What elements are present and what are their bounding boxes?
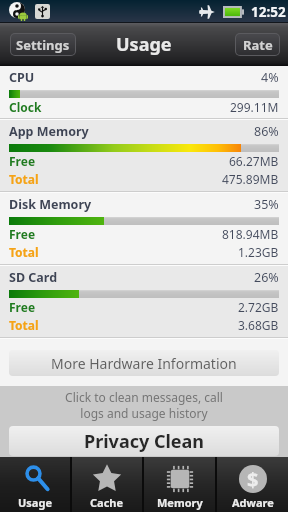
staticText: 4%	[261, 69, 279, 86]
staticText: Total	[9, 244, 39, 260]
staticText: 66.27MB	[229, 153, 279, 169]
other: Usage	[20, 464, 50, 494]
staticText: Rate	[243, 36, 273, 54]
staticText: Settings	[16, 36, 70, 54]
staticText: Click to clean messages, call	[65, 389, 223, 405]
other: Adware	[238, 464, 268, 494]
staticText: 2.72GB	[238, 299, 279, 315]
staticText: Free	[9, 153, 36, 169]
button[interactable]: Adware	[217, 457, 288, 512]
staticText: 26%	[254, 269, 279, 286]
button[interactable]: Disk Memory	[0, 193, 288, 264]
staticText: Disk Memory	[9, 196, 92, 213]
button[interactable]: Usage	[0, 457, 70, 512]
staticText: 299.11M	[230, 99, 279, 115]
staticText: SD Card	[9, 269, 58, 286]
button[interactable]: Memory	[144, 457, 215, 512]
button[interactable]: Privacy Clean	[9, 426, 279, 456]
staticText: Free	[9, 299, 36, 315]
other: Cache	[92, 464, 122, 494]
staticText: Free	[9, 226, 36, 242]
staticText: App Memory	[9, 123, 89, 140]
staticText: 1.23GB	[238, 244, 279, 260]
staticText: 818.94MB	[222, 226, 279, 242]
staticText: Total	[9, 317, 39, 333]
staticText: More Hardware Information	[51, 354, 237, 373]
button[interactable]: Settings	[11, 34, 75, 55]
staticText: Privacy Clean	[84, 429, 205, 454]
button[interactable]: Cache	[72, 457, 142, 512]
staticText: Adware	[232, 495, 274, 510]
button[interactable]: Rate	[236, 34, 279, 55]
staticText: Usage	[18, 495, 52, 510]
staticText: Memory	[157, 495, 203, 510]
staticText: CPU	[9, 69, 35, 86]
staticText: Total	[9, 171, 39, 187]
staticText: 3.68GB	[238, 317, 279, 333]
staticText: Cache	[90, 495, 124, 510]
staticText: Usage	[116, 32, 172, 57]
staticText: logs and usage history	[80, 405, 208, 421]
staticText: 475.89MB	[222, 171, 279, 187]
staticText: $	[247, 466, 259, 493]
button[interactable]: SD Card	[0, 266, 288, 337]
staticText: 35%	[254, 196, 279, 213]
staticText: 12:52	[251, 3, 286, 21]
button[interactable]: CPU	[0, 66, 288, 118]
button[interactable]: App Memory	[0, 120, 288, 191]
staticText: Clock	[9, 99, 42, 115]
button[interactable]: More Hardware Information	[9, 350, 279, 376]
other: Memory	[165, 464, 195, 494]
staticText: 86%	[254, 123, 279, 140]
